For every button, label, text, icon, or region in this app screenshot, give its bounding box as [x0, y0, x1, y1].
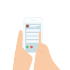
button[interactable]: Hands holding a smartphone illustration	[0, 0, 70, 70]
